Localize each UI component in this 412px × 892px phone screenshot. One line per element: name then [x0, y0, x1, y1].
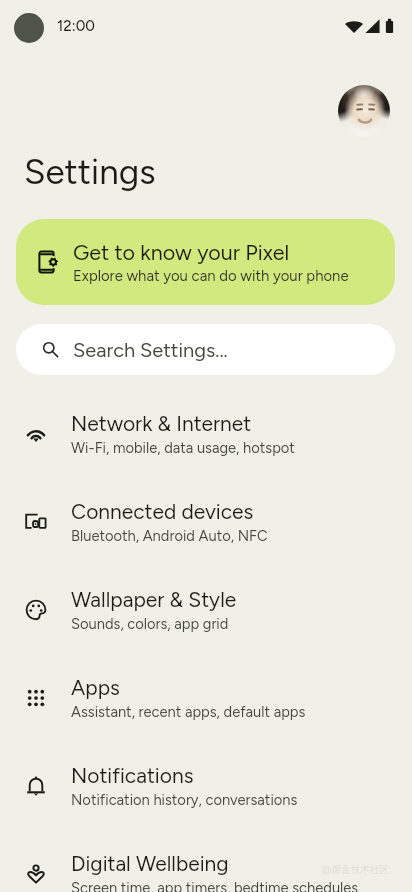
staticText: Digital Wellbeing: [71, 851, 229, 876]
staticText: Explore what you can do with your phone: [73, 267, 349, 285]
button[interactable]: Search Settings...: [16, 324, 395, 375]
staticText: 12:00: [57, 17, 95, 35]
button[interactable]: Notifications: [0, 742, 412, 830]
staticText: Wallpaper & Style: [71, 587, 237, 612]
staticText: Get to know your Pixel: [73, 240, 290, 266]
button[interactable]: Wallpaper & Style: [0, 566, 412, 654]
staticText: Settings: [24, 151, 156, 193]
staticText: Screen time, app timers, bedtime schedul…: [71, 879, 359, 892]
button[interactable]: Apps: [0, 654, 412, 742]
button[interactable]: Get to know your Pixel: [16, 219, 395, 305]
staticText: @掘金技术社区: [322, 864, 390, 876]
staticText: Connected devices: [71, 499, 254, 524]
staticText: Sounds, colors, app grid: [71, 615, 229, 633]
staticText: Apps: [71, 675, 120, 700]
button[interactable]: Network & Internet: [0, 390, 412, 478]
button[interactable]: Digital Wellbeing: [0, 830, 412, 892]
staticText: Network & Internet: [71, 411, 252, 436]
staticText: Bluetooth, Android Auto, NFC: [71, 527, 268, 545]
staticText: Notifications: [71, 763, 194, 788]
staticText: Search Settings...: [73, 338, 228, 362]
staticText: Wi-Fi, mobile, data usage, hotspot: [71, 439, 295, 457]
staticText: Notification history, conversations: [71, 791, 298, 809]
button[interactable]: Connected devices: [0, 478, 412, 566]
staticText: Assistant, recent apps, default apps: [71, 703, 306, 721]
button[interactable]: Account: [338, 85, 390, 137]
